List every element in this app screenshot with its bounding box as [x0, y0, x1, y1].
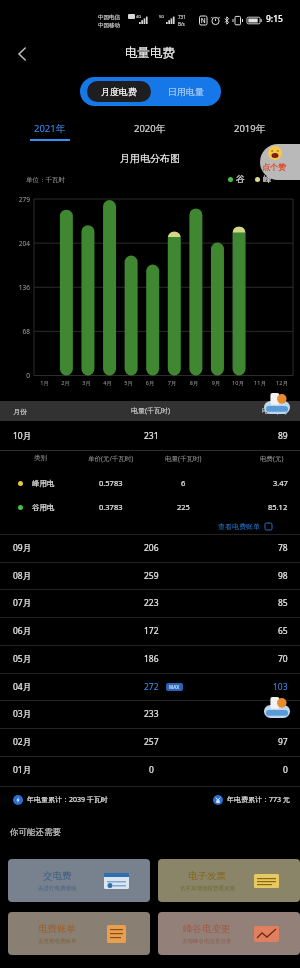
staticText: 去查看电费账单: [38, 938, 77, 945]
staticText: 08月: [13, 570, 32, 582]
staticText: 5G: [159, 14, 165, 19]
staticText: 4月: [97, 379, 118, 387]
staticText: 05月: [13, 653, 32, 665]
staticText: 3.47: [273, 478, 288, 488]
staticText: 谷用电: [32, 503, 55, 512]
staticText: 272: [144, 681, 159, 693]
staticText: 2019年: [234, 122, 266, 135]
staticText: 03月: [13, 708, 32, 720]
staticText: MAX: [169, 684, 180, 690]
button[interactable]: 03月: [0, 700, 300, 728]
staticText: 年电费累计：773 元: [227, 795, 290, 805]
button[interactable]: 06月: [0, 617, 300, 645]
staticText: 0: [6, 371, 30, 380]
staticText: 0: [283, 764, 288, 776]
staticText: 65: [278, 625, 288, 637]
staticText: 97: [278, 736, 288, 748]
staticText: 11月: [249, 379, 271, 387]
staticText: 电量(千瓦时): [131, 406, 171, 416]
staticText: 中国电信: [98, 14, 120, 21]
button[interactable]: 2020年: [100, 118, 200, 144]
button[interactable]: 2021年: [0, 118, 100, 144]
staticText: 9月: [205, 379, 227, 387]
staticText: 68: [6, 327, 30, 336]
button[interactable]: 09月: [0, 534, 300, 562]
staticText: 231: [144, 430, 159, 442]
button[interactable]: 05月: [0, 645, 300, 673]
staticText: 单位：千瓦时: [26, 176, 65, 184]
staticText: 点个赞: [262, 162, 286, 172]
staticText: 09月: [13, 542, 32, 554]
staticText: 136: [6, 283, 30, 292]
staticText: 电量(千瓦时): [165, 454, 202, 463]
staticText: 单价(元/千瓦时): [88, 454, 134, 463]
staticText: B/s: [178, 21, 185, 27]
staticText: 204: [6, 239, 30, 248]
button[interactable]: 07月: [0, 589, 300, 617]
staticText: 89: [278, 430, 288, 442]
staticText: 查看电费账单: [218, 522, 260, 531]
staticText: 731: [178, 14, 186, 20]
button[interactable]: 查看电费账单: [218, 519, 272, 533]
staticText: 2021年: [34, 122, 66, 135]
staticText: 9:15: [266, 13, 283, 25]
staticText: 257: [144, 736, 159, 748]
button[interactable]: 交电费: [8, 859, 150, 902]
staticText: 7月: [161, 379, 183, 387]
staticText: 233: [144, 708, 159, 720]
staticText: 0.3783: [99, 502, 123, 512]
staticText: 类别: [34, 454, 47, 462]
staticText: 206: [144, 542, 159, 554]
button[interactable]: 02月: [0, 728, 300, 756]
staticText: 中国移动: [98, 22, 120, 29]
staticText: 07月: [13, 597, 32, 609]
button[interactable]: 2019年: [200, 118, 300, 144]
staticText: 279: [6, 195, 30, 204]
staticText: 合并其增值税普通发票: [180, 885, 235, 892]
staticText: 2020年: [134, 122, 166, 135]
staticText: 70: [278, 653, 288, 665]
staticText: 259: [144, 570, 159, 582]
staticText: 6: [181, 478, 186, 488]
staticText: 0.5783: [99, 478, 123, 488]
button[interactable]: 月度电费: [87, 81, 151, 102]
button[interactable]: 04月: [0, 673, 300, 701]
staticText: 78: [278, 542, 288, 554]
button[interactable]: 01月: [0, 756, 300, 784]
button[interactable]: Assistant: [260, 144, 300, 180]
staticText: 峰: [263, 174, 272, 185]
staticText: 2月: [55, 379, 76, 387]
button[interactable]: Service assistant: [262, 390, 292, 416]
staticText: 103: [273, 681, 288, 693]
button[interactable]: Service assistant: [262, 694, 292, 720]
button[interactable]: 08月: [0, 562, 300, 590]
button[interactable]: 电费账单: [8, 912, 150, 955]
button[interactable]: 峰谷电变更: [158, 912, 300, 955]
staticText: 峰用电: [32, 479, 55, 488]
staticText: 186: [144, 653, 159, 665]
button[interactable]: 日用电量: [151, 77, 221, 106]
staticText: 10月: [227, 379, 249, 387]
staticText: 电量电费: [125, 45, 175, 61]
staticText: 12月: [271, 379, 293, 387]
staticText: 04月: [13, 681, 32, 693]
staticText: 日用电量: [168, 86, 204, 97]
staticText: 谷: [236, 174, 245, 185]
button[interactable]: 10月: [0, 421, 300, 450]
staticText: 你可能还需要: [10, 827, 61, 838]
staticText: 10月: [13, 430, 32, 442]
button[interactable]: Back: [8, 40, 36, 68]
staticText: 85: [278, 597, 288, 609]
staticText: 225: [177, 502, 190, 512]
staticText: 电子发票: [188, 870, 226, 882]
staticText: 01月: [13, 764, 32, 776]
staticText: 月度电费: [101, 86, 137, 97]
button[interactable]: 电子发票: [158, 859, 300, 902]
staticText: 电费账单: [38, 923, 76, 935]
staticText: 98: [278, 570, 288, 582]
staticText: 02月: [13, 736, 32, 748]
staticText: 月用电分布图: [120, 152, 180, 165]
staticText: 电费(元): [262, 406, 288, 416]
staticText: 去进行电费缴纳: [38, 885, 77, 892]
staticText: 0: [149, 764, 154, 776]
